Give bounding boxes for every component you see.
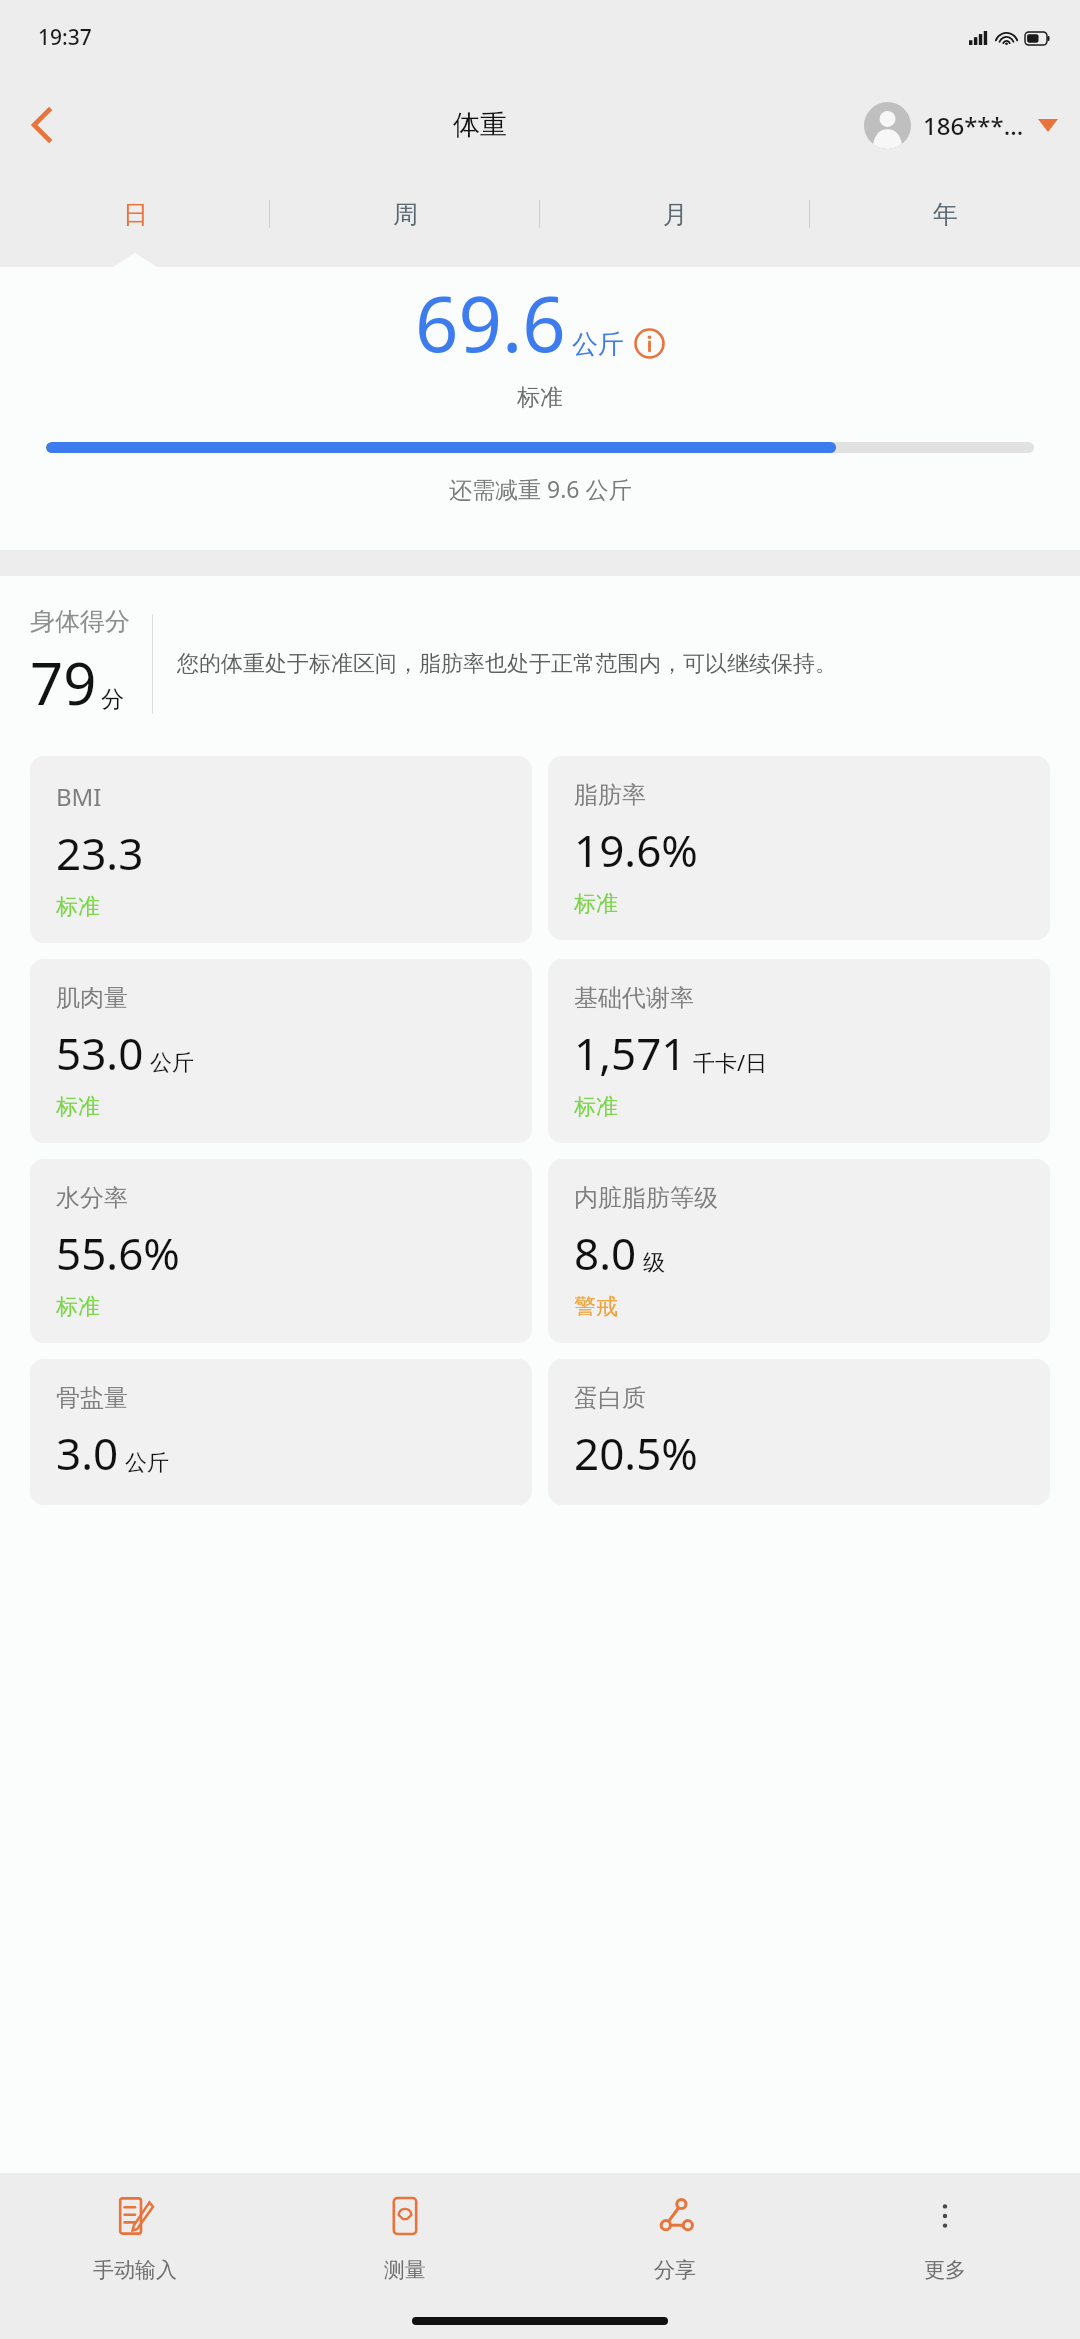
staticText: 55.6% (56, 1223, 180, 1283)
staticText: 标准 (56, 1093, 100, 1121)
staticText: 测量 (384, 2257, 426, 2283)
staticText: 8.0 (574, 1223, 637, 1283)
button[interactable]: 测量 (270, 2173, 540, 2303)
staticText: 53.0 (56, 1023, 144, 1083)
staticText: 基础代谢率 (574, 983, 694, 1013)
staticText: 年 (933, 199, 958, 230)
staticText: 20.5% (574, 1423, 698, 1483)
staticText: 千卡/日 (693, 1047, 768, 1077)
button[interactable]: 骨盐量 (30, 1359, 532, 1505)
staticText: 分 (101, 685, 124, 714)
staticText: 您的体重处于标准区间，脂肪率也处于正常范围内，可以继续保持。 (177, 650, 837, 678)
button[interactable]: BMI (30, 756, 532, 943)
staticText: 身体得分 (30, 606, 130, 637)
staticText: 周 (393, 199, 418, 230)
staticText: 69.6 (415, 271, 566, 375)
staticText: 日 (123, 199, 148, 230)
button[interactable]: 月 (540, 175, 810, 253)
button[interactable]: Info (634, 328, 665, 359)
staticText: 肌肉量 (56, 983, 128, 1013)
staticText: 标准 (56, 1293, 100, 1321)
staticText: BMI (56, 780, 102, 813)
staticText: 水分率 (56, 1183, 128, 1213)
staticText: 月 (663, 199, 688, 230)
staticText: 分享 (654, 2257, 696, 2283)
staticText: 1,571 (574, 1023, 687, 1083)
button[interactable]: 内脏脂肪等级 (548, 1159, 1050, 1343)
button[interactable]: 肌肉量 (30, 959, 532, 1143)
button[interactable]: 水分率 (30, 1159, 532, 1343)
staticText: 公斤 (572, 328, 624, 361)
button[interactable]: 年 (810, 175, 1080, 253)
staticText: 186***... (923, 109, 1024, 142)
button[interactable]: 基础代谢率 (548, 959, 1050, 1143)
staticText: 标准 (574, 890, 618, 918)
button[interactable]: 周 (270, 175, 540, 253)
staticText: 19.6% (574, 820, 698, 880)
button[interactable]: Back (10, 93, 74, 157)
staticText: 标准 (574, 1093, 618, 1121)
staticText: 体重 (453, 108, 507, 142)
staticText: 公斤 (125, 1449, 169, 1477)
button[interactable]: 分享 (540, 2173, 810, 2303)
button[interactable]: 日 (0, 175, 270, 253)
staticText: 还需减重 9.6 公斤 (449, 473, 632, 504)
button[interactable]: 脂肪率 (548, 756, 1050, 940)
staticText: 蛋白质 (574, 1383, 646, 1413)
button[interactable]: 蛋白质 (548, 1359, 1050, 1505)
staticText: 19:37 (38, 23, 92, 52)
staticText: 级 (643, 1249, 665, 1277)
button[interactable]: 手动输入 (0, 2173, 270, 2303)
other: More (925, 2196, 965, 2236)
staticText: 警戒 (574, 1293, 618, 1321)
staticText: 内脏脂肪等级 (574, 1183, 718, 1213)
staticText: 标准 (56, 893, 100, 921)
staticText: 3.0 (56, 1423, 119, 1483)
staticText: 骨盐量 (56, 1383, 128, 1413)
staticText: 手动输入 (93, 2257, 177, 2283)
staticText: 更多 (924, 2257, 966, 2283)
staticText: 79 (30, 643, 97, 722)
button[interactable]: More (810, 2173, 1080, 2303)
button[interactable]: 186***... (864, 102, 1058, 149)
staticText: 公斤 (150, 1049, 194, 1077)
staticText: 23.3 (56, 823, 144, 883)
staticText: 脂肪率 (574, 780, 646, 810)
staticText: 标准 (517, 383, 563, 412)
